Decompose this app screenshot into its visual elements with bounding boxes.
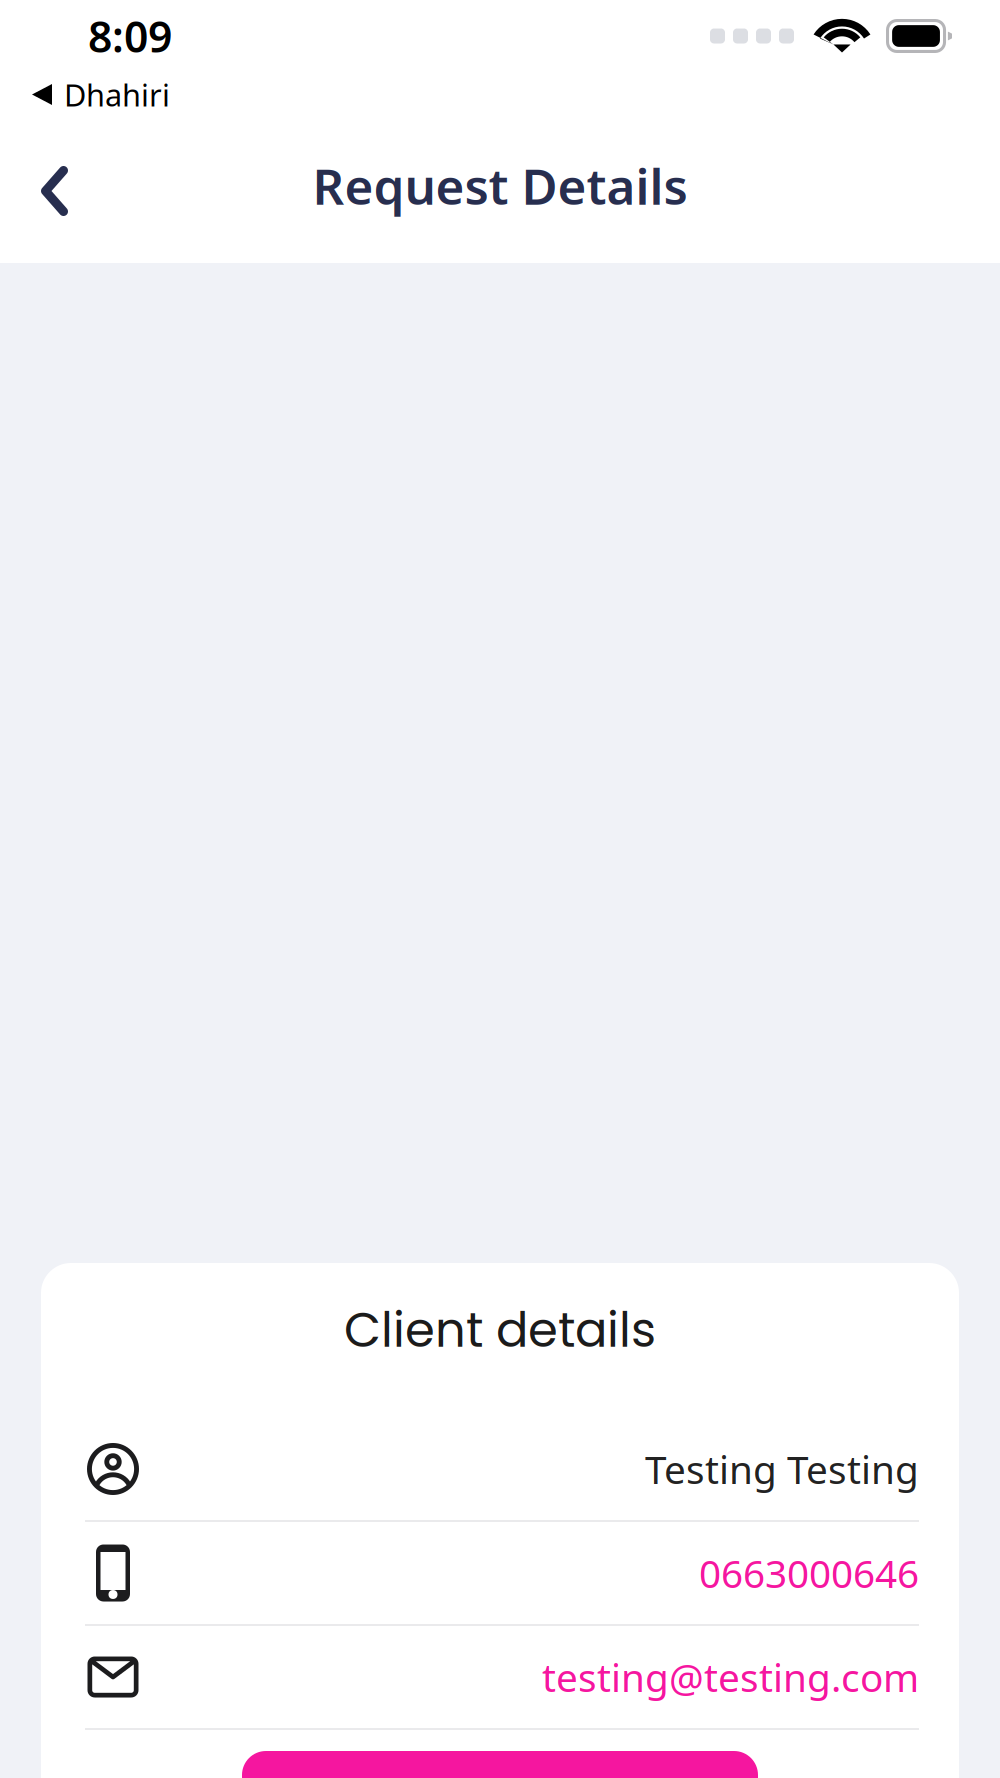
staticText: Client details: [344, 1296, 656, 1364]
button[interactable]: Back: [0, 130, 110, 263]
staticText: Dhahiri: [64, 74, 170, 115]
staticText: Request Details: [312, 153, 687, 218]
staticText: testing@testing.com: [542, 1651, 919, 1703]
staticText: 8:09: [88, 8, 172, 64]
staticText: Testing Testing: [645, 1443, 919, 1495]
button[interactable]: 0663000646: [41, 1522, 959, 1626]
staticText: 0663000646: [699, 1547, 919, 1599]
button[interactable]: [242, 1751, 758, 1778]
button[interactable]: testing@testing.com: [41, 1626, 959, 1730]
